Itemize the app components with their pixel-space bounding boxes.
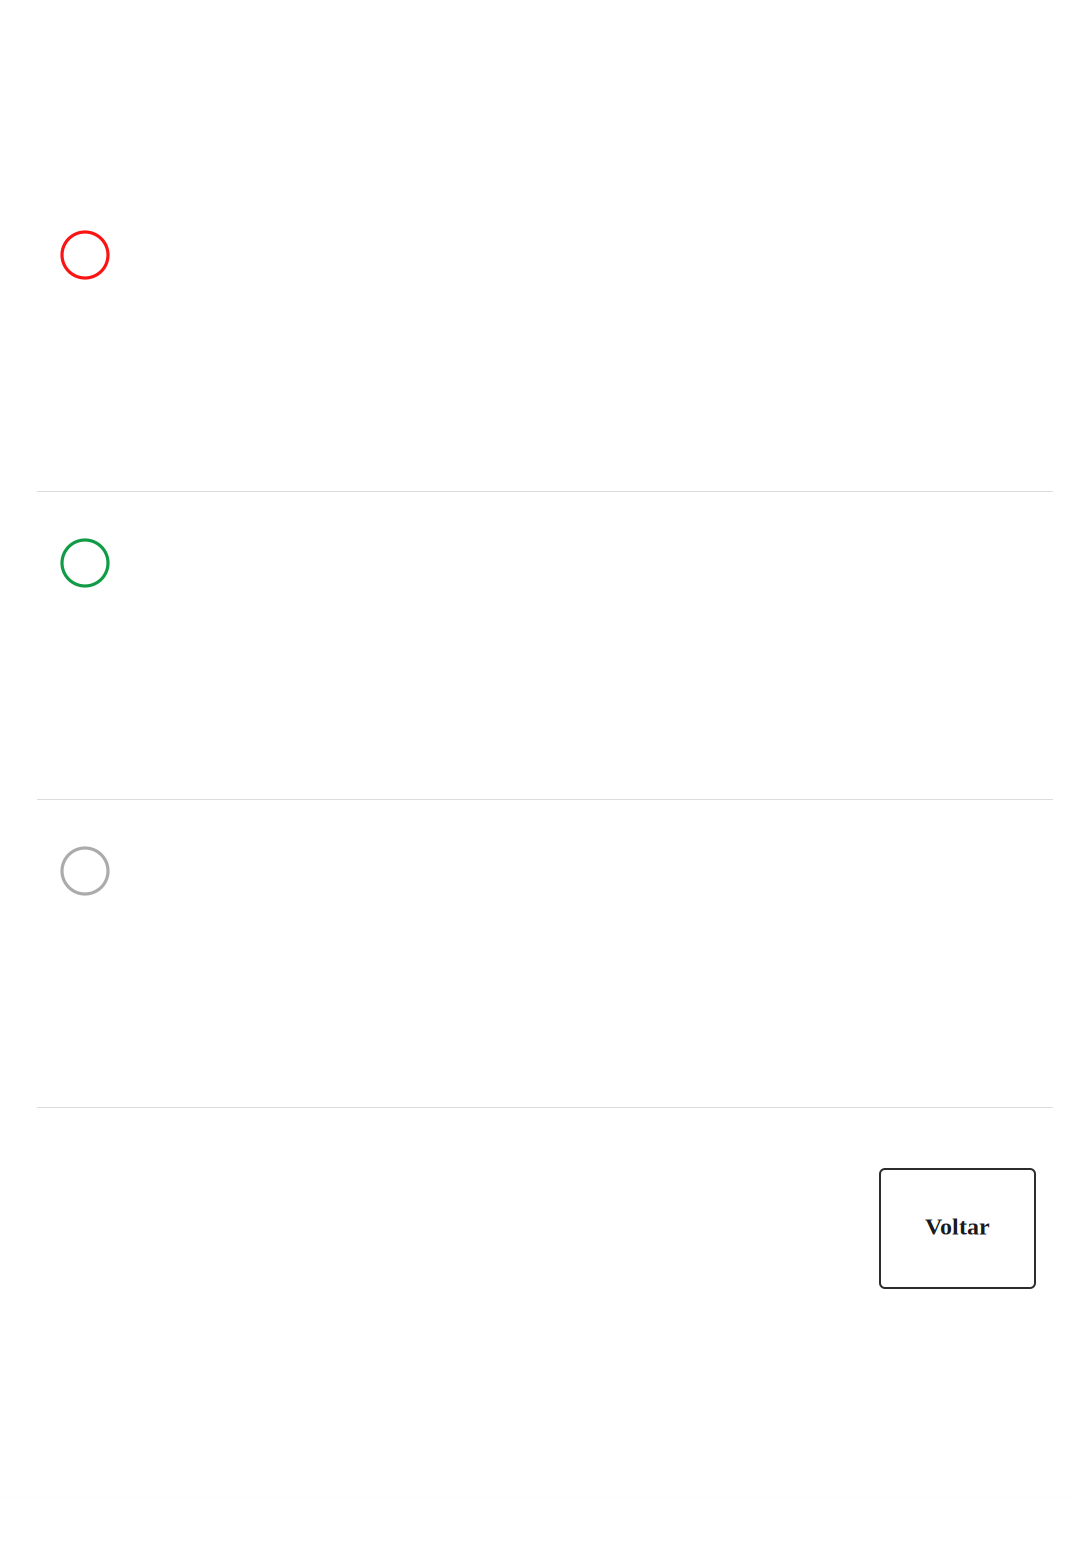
button[interactable]: Voltar [880,1169,1035,1288]
staticText: Voltar [925,1213,990,1240]
button[interactable]: Status verde [0,492,1077,799]
button[interactable]: Status vermelho [0,184,1077,491]
